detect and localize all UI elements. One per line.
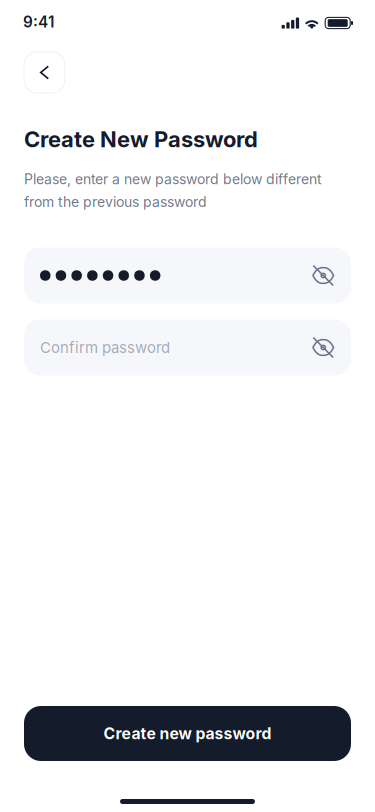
- button[interactable]: Hide password: [312, 265, 334, 286]
- staticText: Create New Password: [24, 126, 258, 153]
- staticText: Confirm password: [40, 338, 170, 357]
- staticText: Please, enter a new password below diffe…: [24, 171, 322, 210]
- staticText: 9:41: [23, 13, 54, 31]
- button[interactable]: Back: [24, 52, 65, 93]
- button[interactable]: Show confirm password: [312, 337, 334, 358]
- button[interactable]: Create new password: [24, 706, 351, 761]
- staticText: Create new password: [103, 724, 271, 743]
